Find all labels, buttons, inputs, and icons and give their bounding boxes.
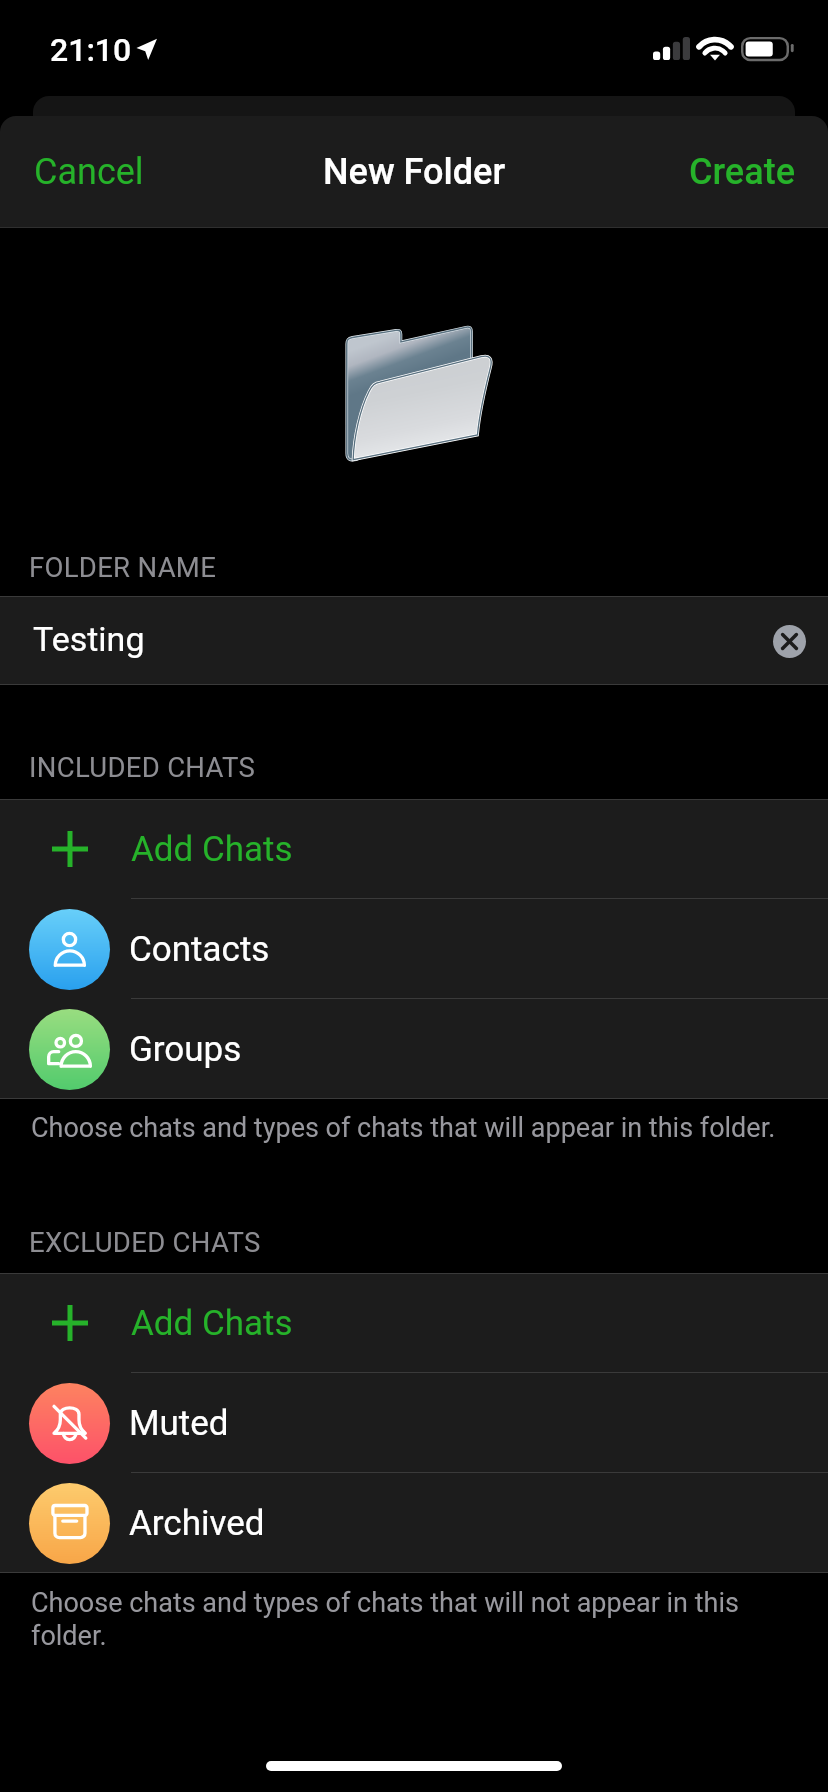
staticText: 21:10 (50, 31, 132, 69)
button[interactable]: Muted (0, 1373, 828, 1473)
button[interactable]: Clear text (756, 608, 822, 674)
staticText: EXCLUDED CHATS (29, 1226, 261, 1258)
staticText: Add Chats (131, 829, 293, 870)
staticText: Choose chats and types of chats that wil… (31, 1112, 793, 1144)
staticText: Muted (129, 1403, 229, 1444)
staticText: INCLUDED CHATS (29, 751, 256, 783)
button[interactable]: Cancel (0, 125, 168, 219)
button[interactable]: Groups (0, 999, 828, 1099)
staticText: Groups (129, 1029, 242, 1070)
staticText: New Folder (323, 151, 506, 193)
button[interactable]: Archived (0, 1473, 828, 1573)
staticText: Archived (129, 1503, 265, 1544)
staticText: Choose chats and types of chats that wil… (31, 1587, 793, 1652)
button[interactable]: Contacts (0, 899, 828, 999)
staticText: Create (689, 151, 795, 193)
button[interactable]: Add Chats (0, 1273, 828, 1373)
staticText: FOLDER NAME (29, 551, 217, 583)
button[interactable]: Create (665, 125, 828, 219)
staticText: Testing (33, 619, 145, 659)
button[interactable]: Add Chats (0, 799, 828, 899)
staticText: Contacts (129, 929, 270, 970)
staticText: Cancel (34, 151, 144, 193)
staticText: Add Chats (131, 1303, 293, 1344)
